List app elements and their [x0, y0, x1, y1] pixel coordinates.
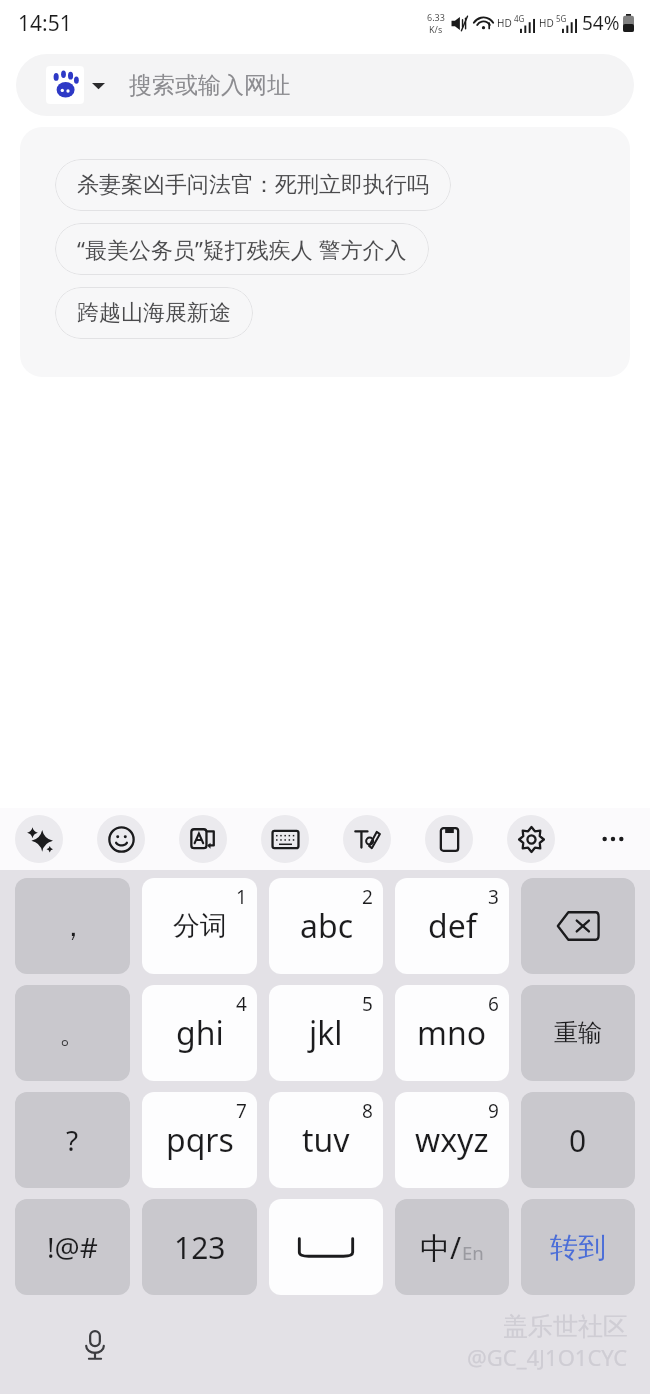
staticText: tuv	[302, 1118, 350, 1162]
staticText: 6.33	[427, 11, 445, 23]
staticText: def	[428, 904, 477, 948]
button[interactable]: def	[395, 878, 509, 974]
staticText: “最美公务员”疑打残疾人 警方介入	[77, 234, 407, 264]
button[interactable]: abc	[269, 878, 383, 974]
button[interactable]: tuv	[269, 1092, 383, 1188]
staticText: wxyz	[415, 1118, 489, 1162]
staticText: abc	[300, 904, 353, 948]
staticText: 123	[174, 1227, 226, 1268]
button[interactable]: 中/	[395, 1199, 509, 1295]
button[interactable]: 跨越山海展新途	[55, 287, 253, 339]
staticText: 5G	[556, 13, 567, 24]
staticText: HD	[539, 16, 554, 30]
button[interactable]: Translate	[179, 815, 227, 863]
staticText: 9	[488, 1098, 499, 1124]
button[interactable]: 杀妻案凶手问法官：死刑立即执行吗	[55, 159, 451, 211]
button[interactable]: More options	[590, 816, 636, 862]
button[interactable]: Clipboard	[425, 815, 473, 863]
staticText: jkl	[309, 1011, 343, 1055]
button[interactable]: pqrs	[142, 1092, 257, 1188]
staticText: 0	[569, 1120, 587, 1161]
staticText: 3	[488, 884, 499, 910]
staticText: ghi	[176, 1011, 224, 1055]
staticText: 转到	[550, 1230, 606, 1265]
staticText: 跨越山海展新途	[77, 299, 231, 327]
staticText: mno	[417, 1011, 487, 1055]
staticText: K/s	[429, 23, 443, 35]
staticText: 盖乐世社区	[503, 1311, 628, 1342]
button[interactable]: Settings	[507, 815, 555, 863]
button[interactable]: Space	[269, 1199, 383, 1295]
button[interactable]: 搜索或输入网址	[16, 54, 634, 116]
button[interactable]: jkl	[269, 985, 383, 1081]
button[interactable]: Voice input	[72, 1322, 118, 1368]
staticText: 54%	[582, 10, 620, 36]
staticText: ?	[66, 1121, 79, 1159]
staticText: 8	[362, 1098, 373, 1124]
button[interactable]: ?	[15, 1092, 130, 1188]
button[interactable]: 0	[521, 1092, 635, 1188]
button[interactable]: !@#	[15, 1199, 130, 1295]
staticText: 4G	[514, 13, 525, 24]
button[interactable]: wxyz	[395, 1092, 509, 1188]
staticText: 2	[362, 884, 373, 910]
button[interactable]: Keyboard layout	[261, 815, 309, 863]
staticText: 。	[59, 1016, 87, 1051]
staticText: 重输	[554, 1018, 602, 1048]
button[interactable]: 转到	[521, 1199, 635, 1295]
button[interactable]: 。	[15, 985, 130, 1081]
button[interactable]: AI suggestions	[15, 815, 63, 863]
button[interactable]: “最美公务员”疑打残疾人 警方介入	[55, 223, 429, 275]
staticText: 杀妻案凶手问法官：死刑立即执行吗	[77, 171, 429, 199]
staticText: En	[462, 1240, 484, 1265]
staticText: 搜索或输入网址	[129, 71, 290, 100]
button[interactable]: 重输	[521, 985, 635, 1081]
staticText: 14:51	[18, 9, 72, 38]
button[interactable]: ，	[15, 878, 130, 974]
staticText: 中/	[420, 1227, 462, 1268]
staticText: 5	[362, 991, 373, 1017]
button[interactable]: ghi	[142, 985, 257, 1081]
button[interactable]: Emoji	[97, 815, 145, 863]
staticText: 7	[236, 1098, 247, 1124]
button[interactable]: Backspace	[521, 878, 635, 974]
staticText: @GC_4J1O1CYC	[467, 1342, 628, 1372]
staticText: ，	[59, 909, 87, 944]
button[interactable]: 分词	[142, 878, 257, 974]
staticText: !@#	[47, 1228, 98, 1266]
button[interactable]: 123	[142, 1199, 257, 1295]
staticText: 1	[236, 884, 247, 910]
button[interactable]: mno	[395, 985, 509, 1081]
staticText: 4	[236, 991, 247, 1017]
staticText: 分词	[173, 909, 227, 943]
staticText: HD	[497, 16, 512, 30]
button[interactable]: Handwriting	[343, 815, 391, 863]
staticText: 6	[488, 991, 499, 1017]
staticText: pqrs	[166, 1118, 234, 1162]
